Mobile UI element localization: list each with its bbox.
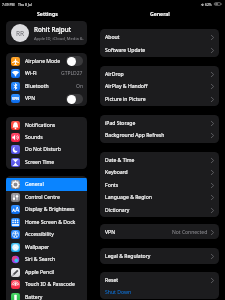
staticText: 7:39 PM (2, 2, 15, 7)
staticText: AirPlay & Handoff (105, 83, 148, 90)
staticText: Control Centre (25, 194, 60, 201)
button[interactable]: Shut Down (100, 286, 219, 298)
button[interactable]: Toggle (66, 94, 83, 104)
button[interactable]: Keyboard (100, 166, 219, 179)
staticText: Legal & Regulatory (105, 253, 151, 260)
staticText: General (25, 181, 44, 188)
staticText: Screen Time (25, 159, 55, 166)
button[interactable]: Notifications (6, 119, 87, 131)
staticText: Dictionary (105, 207, 130, 214)
button[interactable]: AirPlay & Handoff (100, 80, 219, 93)
button[interactable]: Toggle (66, 56, 83, 66)
staticText: Not Connected (172, 229, 208, 236)
staticText: Apple Pencil (25, 269, 55, 276)
button[interactable]: Airplane Mode (6, 55, 87, 67)
staticText: Notifications (25, 122, 56, 129)
staticText: VPN (12, 96, 20, 101)
staticText: Bluetooth (25, 83, 49, 90)
staticText: Battery (25, 294, 43, 300)
staticText: Wallpaper (25, 244, 50, 251)
staticText: Date & Time (105, 157, 135, 164)
staticText: Touch ID & Passcode (25, 281, 75, 288)
button[interactable]: Dictionary (100, 204, 219, 216)
button[interactable]: Display & Brightness (6, 203, 87, 216)
staticText: Settings (37, 10, 58, 17)
staticText: Software Update (105, 47, 146, 54)
staticText: On (76, 83, 83, 90)
button[interactable]: VPN (6, 92, 87, 105)
button[interactable]: Background App Refresh (100, 129, 219, 142)
button[interactable]: Wi-Fi (6, 67, 87, 80)
button[interactable]: Sounds (6, 131, 87, 143)
button[interactable]: Apple Pencil (6, 266, 87, 278)
staticText: Rohit Rajput (34, 25, 72, 34)
button[interactable]: Software Update (100, 44, 219, 56)
staticText: General (150, 10, 170, 17)
button[interactable]: Screen Time (6, 156, 87, 168)
staticText: Accessibility (25, 231, 54, 238)
button[interactable]: Home Screen & Dock (6, 216, 87, 228)
staticText: Picture in Picture (105, 96, 146, 103)
button[interactable]: RR (6, 21, 87, 45)
button[interactable]: Control Centre (6, 191, 87, 203)
button[interactable]: Accessibility (6, 228, 87, 241)
button[interactable]: iPad Storage (100, 117, 219, 129)
staticText: Sounds (25, 134, 43, 141)
staticText: iPad Storage (105, 120, 136, 127)
button[interactable]: Picture in Picture (100, 93, 219, 105)
staticText: Keyboard (105, 169, 128, 176)
button[interactable]: Touch ID & Passcode (6, 278, 87, 291)
staticText: Airplane Mode (25, 58, 61, 65)
staticText: Display & Brightness (25, 206, 75, 213)
staticText: Siri & Search (25, 256, 56, 263)
staticText: Home Screen & Dock (25, 219, 76, 226)
button[interactable]: General (6, 178, 87, 191)
staticText: Fonts (105, 182, 119, 189)
button[interactable]: Siri & Search (6, 253, 87, 266)
button[interactable]: Language & Region (100, 191, 219, 204)
staticText: VPN (25, 95, 36, 102)
staticText: Language & Region (105, 194, 152, 201)
button[interactable]: About (100, 31, 219, 44)
staticText: VPN (105, 229, 116, 236)
button[interactable]: Fonts (100, 179, 219, 191)
button[interactable]: Date & Time (100, 154, 219, 166)
staticText: Do Not Disturb (25, 146, 61, 153)
staticText: Shut Down (105, 289, 132, 296)
button[interactable]: Battery (6, 291, 87, 300)
staticText: RR (16, 29, 25, 38)
staticText: Background App Refresh (105, 132, 165, 139)
staticText: Apple ID, iCloud, Media &… (34, 36, 84, 42)
staticText: AirDrop (105, 71, 124, 78)
button[interactable]: Do Not Disturb (6, 143, 87, 156)
button[interactable]: VPN (100, 226, 219, 238)
button[interactable]: Reset (100, 274, 219, 286)
staticText: Thu 8 Jul (18, 2, 32, 7)
staticText: Wi-Fi (25, 70, 37, 77)
button[interactable]: Bluetooth (6, 80, 87, 92)
staticText: 62% (205, 2, 212, 7)
button[interactable]: AirDrop (100, 68, 219, 80)
button[interactable]: Wallpaper (6, 241, 87, 253)
button[interactable]: Legal & Regulatory (100, 250, 219, 263)
staticText: Reset (105, 277, 119, 284)
staticText: GTPLD27 (61, 70, 83, 77)
staticText: About (105, 34, 120, 41)
